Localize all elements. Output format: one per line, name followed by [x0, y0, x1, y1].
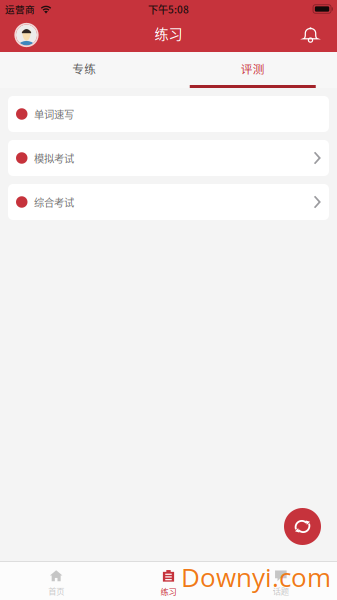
button[interactable]: 综合考试: [8, 184, 329, 220]
button[interactable]: 练习: [112, 561, 225, 600]
staticText: 练习: [154, 23, 182, 43]
staticText: 话题: [273, 585, 289, 597]
button[interactable]: 话题: [225, 561, 337, 600]
button[interactable]: 模拟考试: [8, 140, 329, 176]
staticText: 运营商: [5, 2, 35, 16]
button[interactable]: 首页: [0, 561, 112, 600]
staticText: 模拟考试: [34, 151, 74, 165]
staticText: 首页: [48, 585, 64, 597]
button[interactable]: Profile: [0, 23, 38, 47]
staticText: 练习: [160, 585, 176, 597]
staticText: 下午5:08: [148, 2, 189, 16]
button[interactable]: Notifications: [302, 26, 337, 43]
staticText: 综合考试: [34, 195, 74, 209]
button[interactable]: 评测: [168, 52, 337, 88]
staticText: 单词速写: [34, 107, 74, 121]
button[interactable]: Refresh: [284, 508, 321, 545]
staticText: 评测: [241, 60, 265, 77]
staticText: Downyi.com: [181, 559, 331, 595]
button[interactable]: 专练: [0, 52, 168, 88]
button[interactable]: 单词速写: [8, 96, 329, 132]
staticText: 专练: [72, 60, 96, 77]
